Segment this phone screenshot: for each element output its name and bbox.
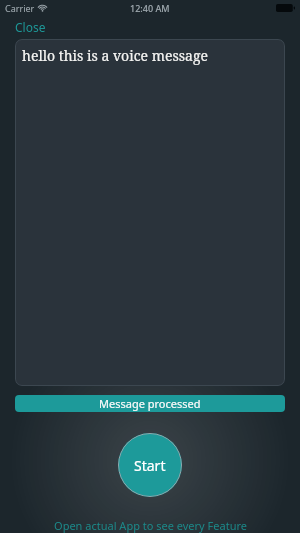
staticText: hello this is a voice message [22, 46, 208, 65]
button[interactable]: Open actual App to see every Feature [0, 518, 300, 533]
button[interactable]: Close [14, 18, 47, 36]
button[interactable]: Start [118, 433, 182, 497]
button[interactable]: Message processed [15, 395, 285, 412]
staticText: Start [134, 456, 166, 475]
button[interactable]: hello this is a voice message [15, 39, 285, 386]
staticText: Open actual App to see every Feature [54, 518, 247, 533]
staticText: Message processed [99, 396, 201, 411]
staticText: Close [15, 19, 46, 35]
staticText: 12:40 AM [130, 2, 170, 14]
staticText: Carrier [5, 2, 35, 14]
